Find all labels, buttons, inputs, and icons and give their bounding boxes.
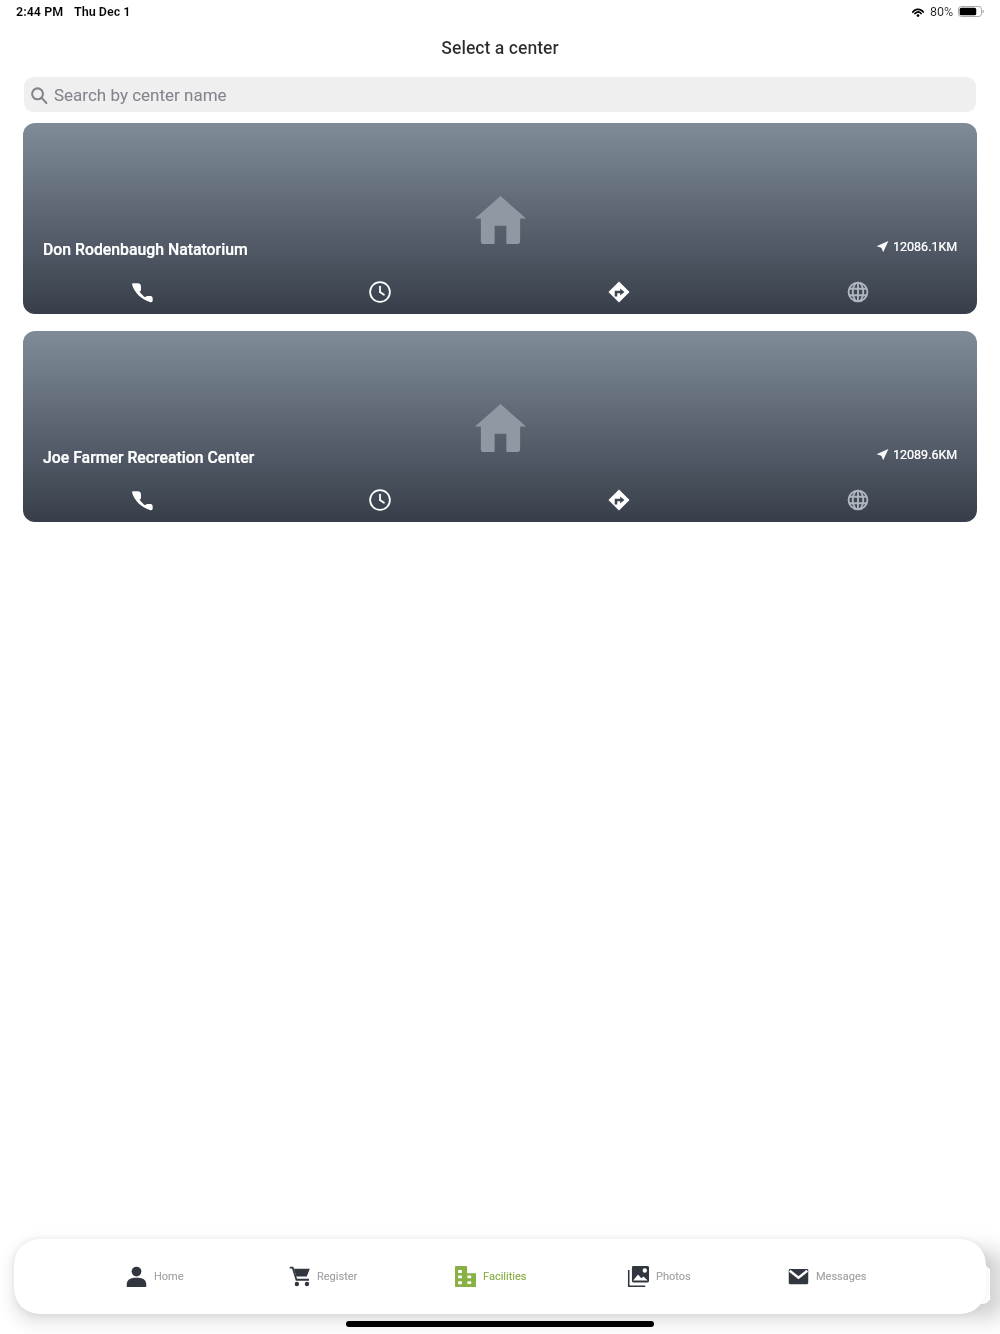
button[interactable]: Home [71, 1239, 239, 1314]
staticText: Search by center name [54, 85, 227, 105]
staticText: Don Rodenbaugh Natatorium [43, 240, 248, 259]
button[interactable]: Facilities [407, 1239, 575, 1314]
button[interactable]: Photos [575, 1239, 743, 1314]
staticText: Select a center [0, 38, 1000, 59]
staticText: 2:44 PM [16, 4, 64, 19]
button[interactable]: Website [738, 477, 977, 522]
staticText: Facilities [483, 1270, 527, 1283]
staticText: 80% [930, 4, 954, 19]
button[interactable]: Hours [261, 269, 499, 314]
staticText: Home [154, 1270, 184, 1283]
staticText: Thu Dec 1 [74, 4, 131, 19]
button[interactable]: Website [738, 269, 977, 314]
staticText: Joe Farmer Recreation Center [43, 448, 255, 467]
button[interactable]: Call [23, 269, 261, 314]
button[interactable]: Register [239, 1239, 407, 1314]
staticText: Messages [816, 1270, 867, 1283]
staticText: Register [317, 1270, 358, 1283]
staticText: 12086.1KM [893, 239, 958, 254]
button[interactable]: Call [23, 477, 261, 522]
button[interactable]: Directions [499, 477, 738, 522]
button[interactable]: Search by center name [24, 77, 976, 112]
button[interactable]: Directions [499, 269, 738, 314]
staticText: 12089.6KM [893, 447, 958, 462]
button[interactable]: Don Rodenbaugh Natatorium [23, 123, 977, 314]
staticText: Photos [656, 1270, 691, 1283]
button[interactable]: Messages [743, 1239, 911, 1314]
button[interactable]: Joe Farmer Recreation Center [23, 331, 977, 522]
button[interactable]: Hours [261, 477, 499, 522]
